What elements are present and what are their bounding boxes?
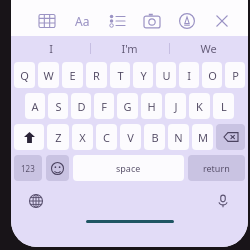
button[interactable]: I (11, 36, 90, 60)
staticText: O (208, 68, 217, 83)
staticText: space (116, 162, 141, 174)
staticText: J (174, 99, 178, 114)
button[interactable]: We (169, 36, 248, 60)
button[interactable]: U (156, 62, 176, 88)
button[interactable]: Insert table (35, 9, 59, 33)
button[interactable]: I (179, 62, 199, 88)
button[interactable]: Close (210, 9, 234, 33)
button[interactable]: X (72, 124, 93, 150)
button[interactable]: Text format (70, 9, 94, 33)
button[interactable]: return (188, 155, 245, 181)
button[interactable]: V (120, 124, 141, 150)
staticText: We (200, 41, 217, 56)
staticText: K (196, 99, 203, 114)
button[interactable]: P (225, 62, 245, 88)
button[interactable]: C (96, 124, 117, 150)
button[interactable]: Y (133, 62, 153, 88)
button[interactable]: D (71, 93, 91, 119)
staticText: D (77, 99, 86, 114)
button[interactable]: Markup (175, 9, 199, 33)
staticText: Q (20, 68, 29, 83)
button[interactable]: S (48, 93, 68, 119)
button[interactable]: A (25, 93, 45, 119)
staticText: H (147, 99, 156, 114)
staticText: P (232, 68, 239, 83)
button[interactable]: B (144, 124, 165, 150)
button[interactable]: Bullet list (105, 9, 129, 33)
button[interactable]: J (165, 93, 186, 119)
button[interactable]: O (202, 62, 222, 88)
staticText: B (151, 130, 159, 145)
staticText: G (123, 99, 132, 114)
staticText: I (187, 68, 191, 83)
button[interactable]: space (73, 155, 184, 181)
staticText: Y (140, 68, 147, 83)
button[interactable]: K (189, 93, 210, 119)
staticText: L (221, 99, 227, 114)
button[interactable]: Q (14, 62, 35, 88)
staticText: R (93, 68, 100, 83)
button[interactable]: R (86, 62, 107, 88)
staticText: Aa (75, 13, 90, 29)
staticText: return (203, 162, 230, 174)
staticText: T (117, 68, 124, 83)
button[interactable]: W (38, 62, 59, 88)
button[interactable]: T (110, 62, 130, 88)
staticText: E (69, 68, 76, 83)
button[interactable]: Change keyboard language (25, 190, 47, 212)
staticText: I (49, 41, 53, 56)
staticText: C (103, 130, 110, 145)
staticText: N (174, 130, 183, 145)
button[interactable]: G (117, 93, 138, 119)
button[interactable]: I'm (90, 36, 169, 60)
button[interactable]: F (94, 93, 114, 119)
staticText: A (31, 99, 39, 114)
button[interactable]: Shift (14, 124, 44, 150)
staticText: X (79, 130, 86, 145)
staticText: S (55, 99, 62, 114)
button[interactable]: N (168, 124, 189, 150)
button[interactable]: Dictation (212, 190, 234, 212)
button[interactable]: Z (47, 124, 69, 150)
staticText: M (198, 130, 208, 145)
button[interactable]: Camera (140, 9, 164, 33)
staticText: Z (55, 130, 62, 145)
staticText: W (43, 68, 54, 83)
button[interactable]: Emoji (46, 155, 69, 181)
staticText: I'm (121, 41, 138, 56)
staticText: V (127, 130, 134, 145)
button[interactable]: E (62, 62, 83, 88)
button[interactable]: 123 (14, 155, 42, 181)
staticText: F (101, 99, 107, 114)
staticText: 123 (21, 163, 35, 174)
button[interactable]: M (192, 124, 213, 150)
button[interactable]: Backspace (216, 124, 245, 150)
button[interactable]: H (141, 93, 162, 119)
button[interactable]: L (213, 93, 234, 119)
staticText: U (162, 68, 171, 83)
